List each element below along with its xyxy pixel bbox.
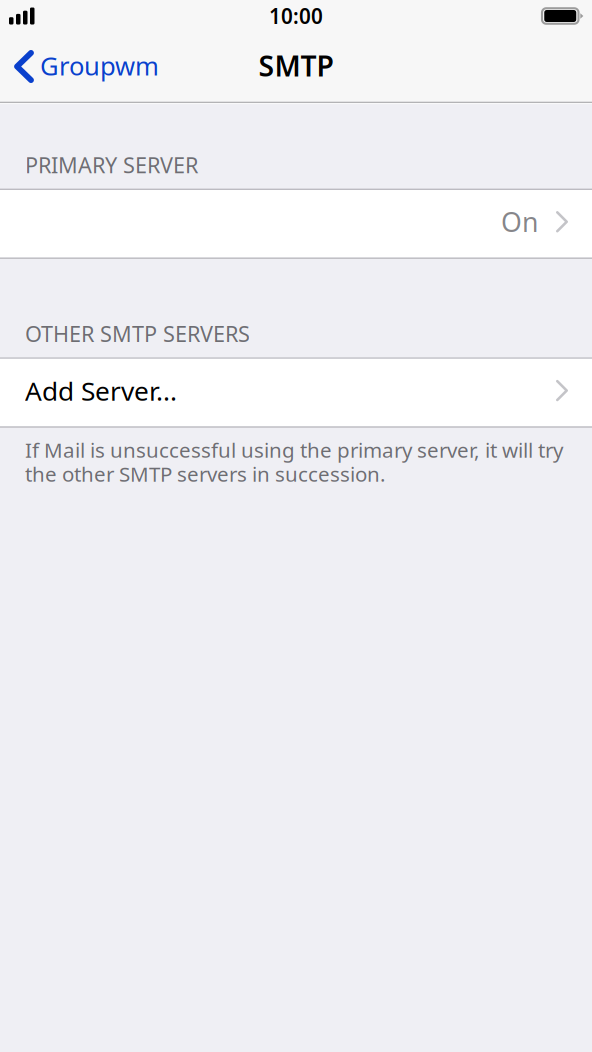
staticText: OTHER SMTP SERVERS [25, 319, 250, 348]
staticText: 10:00 [269, 2, 323, 30]
button[interactable]: Groupwm [0, 32, 169, 101]
button[interactable]: On [0, 190, 592, 257]
button[interactable]: Add Server... [0, 359, 592, 426]
staticText: On [501, 204, 538, 240]
staticText: If Mail is unsuccessful using the primar… [25, 436, 563, 488]
staticText: Groupwm [40, 48, 159, 83]
staticText: Add Server... [25, 373, 177, 408]
staticText: SMTP [258, 46, 333, 85]
staticText: PRIMARY SERVER [25, 150, 198, 180]
